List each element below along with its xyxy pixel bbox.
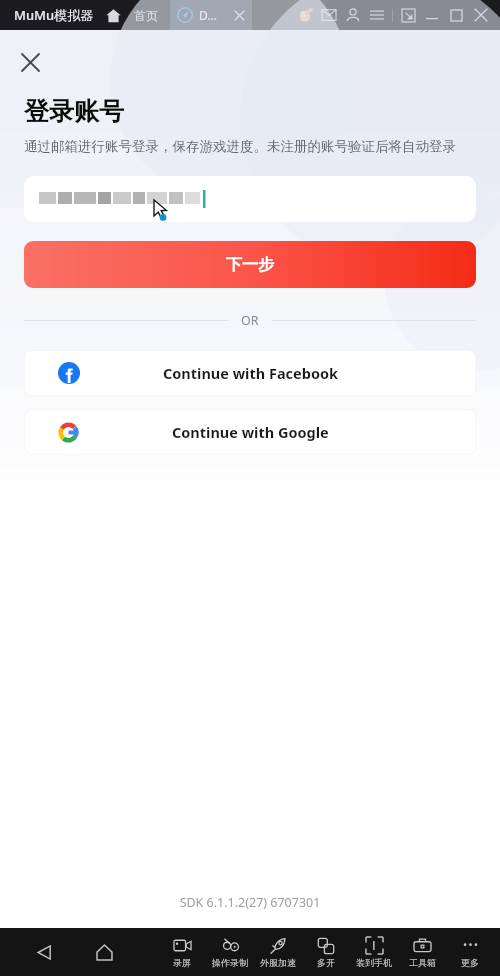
button[interactable]: 装到手机 [350, 928, 398, 976]
button[interactable]: Back [26, 934, 62, 970]
staticText: Continue with Facebook [163, 363, 338, 383]
staticText: 登录账号 [24, 96, 124, 127]
button[interactable]: 首页 [134, 8, 158, 23]
button[interactable]: Close window [468, 2, 494, 28]
button[interactable]: Minimize [420, 3, 444, 27]
staticText: 工具箱 [409, 957, 436, 968]
button[interactable]: 多开 [302, 928, 350, 976]
staticText: 录屏 [173, 957, 191, 968]
button[interactable]: Messages [317, 3, 341, 27]
staticText: OR [241, 312, 259, 329]
button[interactable]: Home [86, 934, 122, 970]
button[interactable]: Close [14, 46, 46, 78]
button[interactable]: D... [170, 0, 252, 30]
staticText: 多开 [317, 957, 335, 968]
button[interactable]: 下一步 [24, 241, 476, 288]
staticText: Continue with Google [172, 422, 329, 442]
button[interactable] [24, 176, 476, 222]
button[interactable]: Continue with Google [24, 409, 476, 455]
button[interactable]: Maximize [444, 3, 468, 27]
button[interactable]: Close tab [230, 6, 248, 24]
staticText: 下一步 [226, 255, 274, 275]
staticText: 更多 [461, 957, 479, 968]
button[interactable]: Gift [293, 3, 317, 27]
button[interactable]: 操作录制 [206, 928, 254, 976]
button[interactable]: Menu [365, 3, 389, 27]
button[interactable]: Resize [396, 3, 420, 27]
staticText: 外服加速 [260, 957, 296, 968]
staticText: 通过邮箱进行账号登录，保存游戏进度。未注册的账号验证后将自动登录 [24, 138, 456, 155]
staticText: MuMu模拟器 [14, 6, 94, 24]
staticText: 装到手机 [356, 957, 392, 968]
button[interactable]: 更多 [446, 928, 494, 976]
button[interactable]: 工具箱 [398, 928, 446, 976]
button[interactable]: Account [341, 3, 365, 27]
staticText: 操作录制 [212, 957, 248, 968]
button[interactable]: 外服加速 [254, 928, 302, 976]
staticText: D... [199, 7, 217, 23]
button[interactable]: Continue with Facebook [24, 350, 476, 396]
button[interactable]: Home [102, 4, 124, 26]
button[interactable]: 录屏 [158, 928, 206, 976]
staticText: SDK 6.1.1.2(27) 6707301 [0, 894, 500, 911]
